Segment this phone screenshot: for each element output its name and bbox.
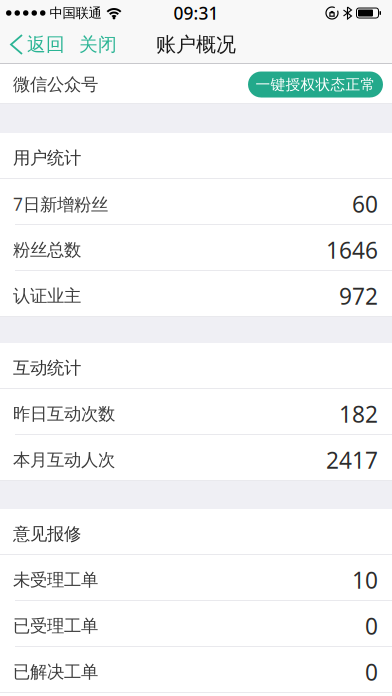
staticText: 未受理工单 — [13, 569, 98, 591]
staticText: 已受理工单 — [13, 615, 98, 637]
staticText: 60 — [352, 189, 378, 219]
button[interactable]: 关闭 — [65, 33, 117, 56]
staticText: 一键授权状态正常 — [255, 75, 375, 93]
staticText: 中国联通 — [49, 5, 101, 21]
staticText: 返回 — [27, 33, 65, 56]
staticText: 账户概况 — [156, 32, 236, 57]
staticText: 972 — [339, 281, 378, 311]
staticText: 182 — [339, 399, 378, 429]
staticText: 1646 — [326, 235, 378, 265]
staticText: 微信公众号 — [13, 74, 98, 95]
staticText: 2417 — [326, 445, 378, 475]
staticText: 意见报修 — [13, 523, 81, 545]
staticText: 本月互动人次 — [13, 449, 115, 471]
staticText: 关闭 — [79, 33, 117, 56]
staticText: 认证业主 — [13, 285, 81, 307]
staticText: 互动统计 — [13, 357, 81, 379]
staticText: 10 — [352, 565, 378, 595]
staticText: 7日新增粉丝 — [13, 192, 108, 215]
button[interactable]: 一键授权状态正常 — [248, 71, 383, 97]
staticText: 0 — [365, 657, 378, 687]
staticText: 用户统计 — [13, 147, 81, 169]
staticText: 已解决工单 — [13, 661, 98, 683]
staticText: 粉丝总数 — [13, 239, 81, 261]
button[interactable]: 返回 — [0, 33, 65, 56]
staticText: 09:31 — [173, 1, 218, 24]
staticText: 昨日互动次数 — [13, 403, 115, 425]
staticText: 0 — [365, 611, 378, 641]
